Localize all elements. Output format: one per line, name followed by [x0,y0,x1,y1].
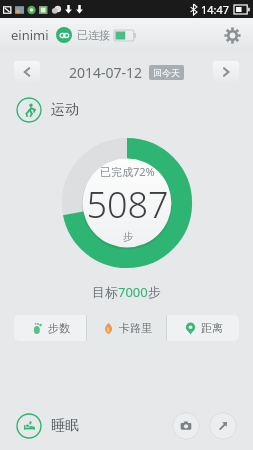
staticText: 已连接 [77,28,110,42]
button[interactable]: 回今天 [149,65,184,80]
button[interactable]: Settings [219,22,245,48]
staticText: 7000 [118,283,148,301]
button[interactable]: Next day [213,61,239,83]
staticText: 回今天 [153,67,180,78]
staticText: 运动 [51,101,79,119]
button[interactable]: 睡眠 [16,413,79,439]
staticText: 2014-07-12 [69,63,143,82]
button[interactable]: Camera [172,412,200,440]
button[interactable]: 卡路里 [87,315,166,341]
button[interactable]: Share [209,412,237,440]
staticText: 5087 [86,180,169,229]
button[interactable]: 运动 [0,93,253,127]
staticText: einimi [11,26,49,44]
staticText: 目标 [92,284,118,300]
staticText: 步数 [48,321,70,335]
button[interactable]: Previous day [14,61,40,83]
button[interactable]: 距离 [167,315,239,341]
staticText: 卡路里 [119,321,152,335]
button[interactable]: 步数 [14,315,86,341]
staticText: 已完成72% [100,164,155,179]
staticText: 步 [148,284,161,300]
staticText: 睡眠 [51,417,79,435]
staticText: 步 [123,230,133,243]
staticText: 距离 [201,321,223,335]
staticText: 14:47 [201,2,230,17]
